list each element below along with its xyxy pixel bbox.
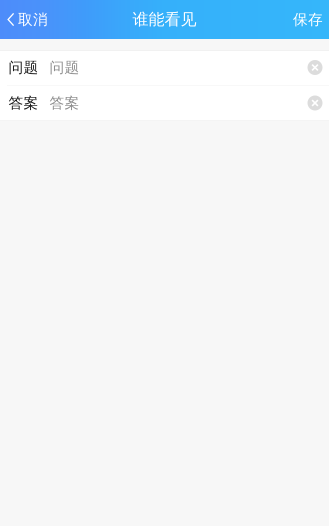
- button[interactable]: 答案: [0, 85, 301, 120]
- staticText: 问题: [8, 58, 38, 76]
- button[interactable]: 取消: [0, 0, 54, 39]
- staticText: 答案: [8, 94, 38, 112]
- button[interactable]: Clear text: [301, 50, 329, 85]
- button[interactable]: 保存: [283, 0, 329, 39]
- staticText: 保存: [293, 10, 323, 28]
- staticText: 答案: [49, 94, 79, 112]
- button[interactable]: Clear text: [301, 85, 329, 120]
- staticText: 谁能看见: [132, 10, 196, 29]
- staticText: 取消: [18, 10, 48, 28]
- button[interactable]: 问题: [0, 50, 301, 85]
- staticText: 问题: [49, 58, 79, 76]
